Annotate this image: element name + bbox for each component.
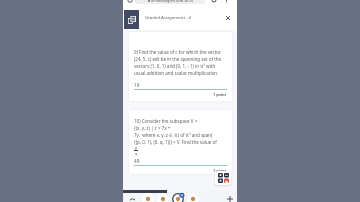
button[interactable]: Close	[220, 10, 235, 25]
staticText: Graded Assignment - 4	[145, 14, 192, 20]
staticText: p	[135, 145, 138, 150]
staticText: 49	[134, 158, 140, 164]
button[interactable]: Google Forms	[124, 10, 139, 29]
staticText: 19	[134, 82, 140, 88]
button[interactable]: Tab	[142, 193, 154, 202]
staticText: 9) Find the value of c for which the vec…	[134, 49, 222, 76]
staticText: 1 point	[213, 168, 227, 173]
button[interactable]: Tabs	[126, 0, 134, 4]
button[interactable]: More options	[223, 0, 230, 4]
button[interactable]: Accessibility tools	[215, 171, 231, 185]
button[interactable]: 9) Find the value of c for which the vec…	[128, 31, 233, 102]
button[interactable]: History	[210, 0, 218, 4]
button[interactable]: 10) Consider the subspace V = {(x, y, z)…	[128, 109, 233, 175]
button[interactable]: Tab	[187, 193, 199, 202]
staticText: onlinedegree.iitm.ac.in	[151, 0, 193, 3]
button[interactable]: onlinedegree.iitm.ac.in	[135, 0, 205, 4]
staticText: 10) Consider the subspace V = {(x, y, z)…	[134, 118, 217, 145]
button[interactable]: Expand tabs	[126, 193, 138, 202]
button[interactable]: Tab	[157, 193, 169, 202]
button[interactable]: Tab	[172, 193, 184, 202]
button[interactable]: New tab	[224, 193, 236, 202]
staticText: 1 point	[213, 92, 227, 97]
staticText: q	[135, 151, 138, 156]
